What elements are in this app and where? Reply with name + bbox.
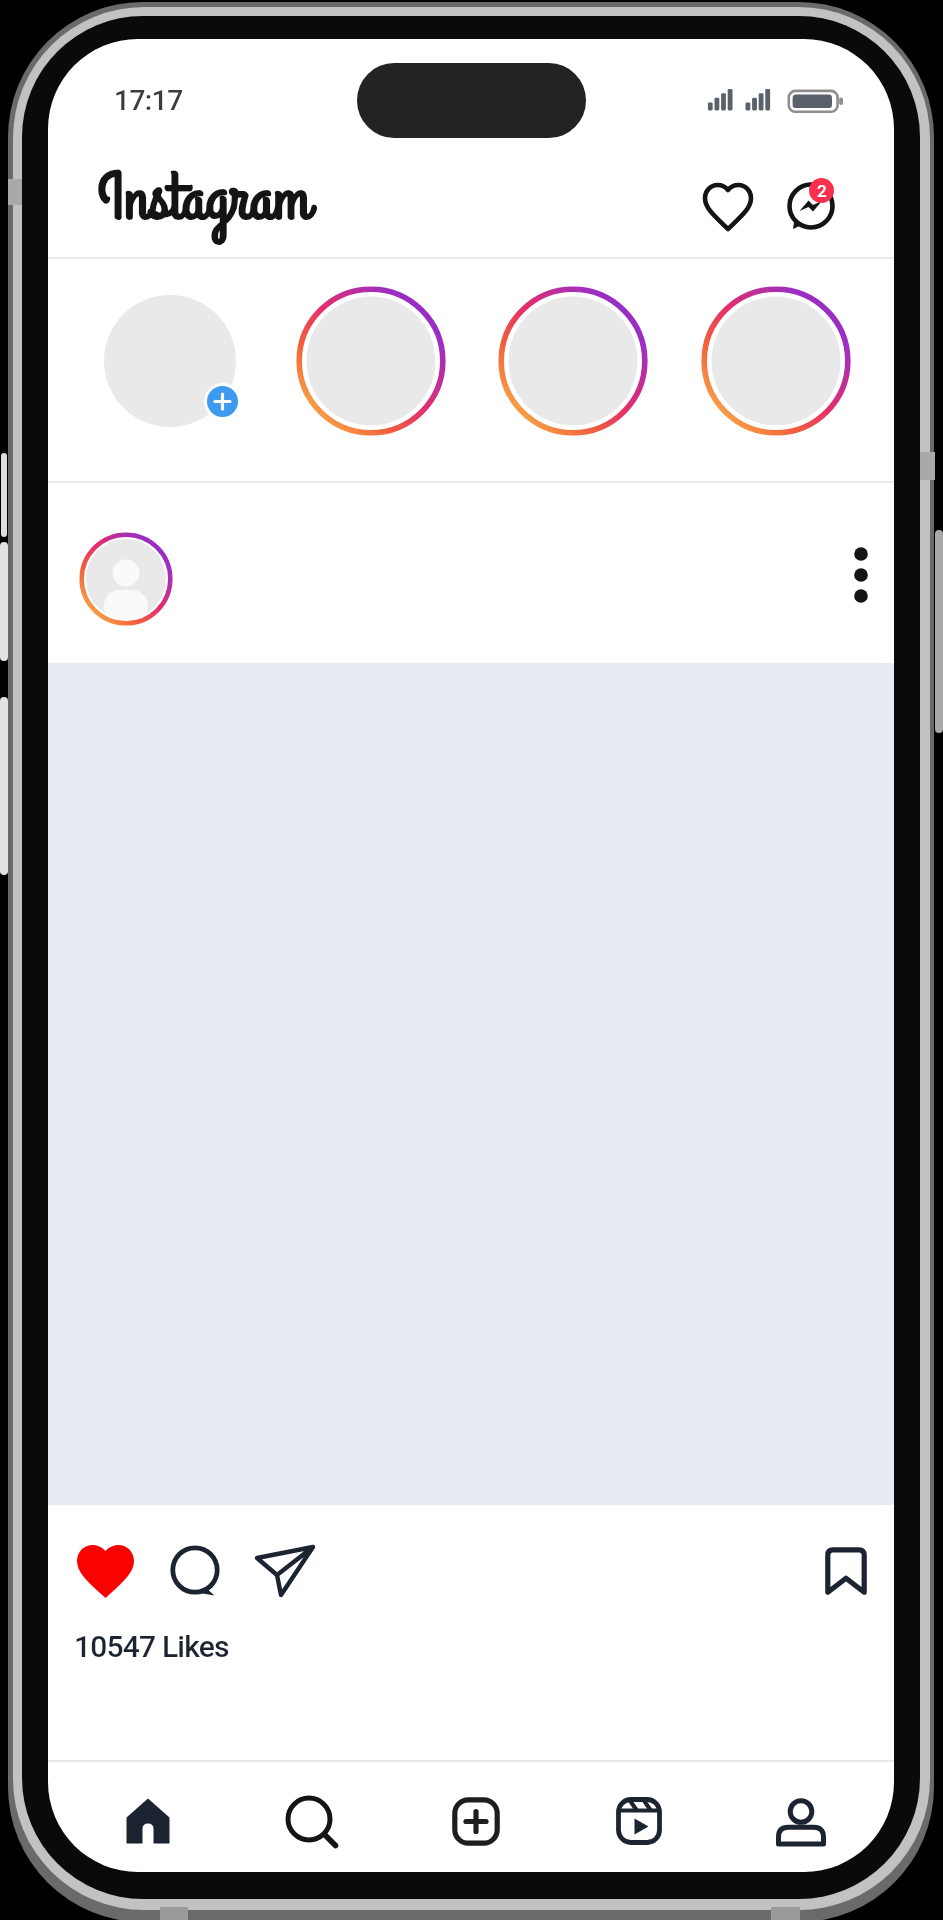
button[interactable] (285, 1795, 339, 1849)
button[interactable] (616, 1797, 662, 1845)
button[interactable] (498, 286, 648, 436)
button[interactable] (104, 295, 236, 427)
button[interactable] (296, 286, 446, 436)
staticText: 10547 Likes (74, 1629, 229, 1664)
button[interactable] (703, 183, 753, 231)
button[interactable] (123, 1797, 173, 1845)
button[interactable] (452, 1797, 500, 1846)
staticText: 2 (817, 181, 827, 201)
button[interactable] (701, 286, 851, 436)
button[interactable] (775, 1792, 827, 1846)
button[interactable] (825, 1547, 867, 1595)
button[interactable] (785, 179, 843, 237)
staticText: Instagram (98, 154, 311, 245)
button[interactable] (77, 1545, 134, 1598)
button[interactable] (254, 1544, 316, 1598)
button[interactable] (848, 544, 874, 606)
button[interactable] (168, 1544, 222, 1598)
staticText: 17:17 (114, 84, 183, 117)
button[interactable] (79, 532, 173, 626)
